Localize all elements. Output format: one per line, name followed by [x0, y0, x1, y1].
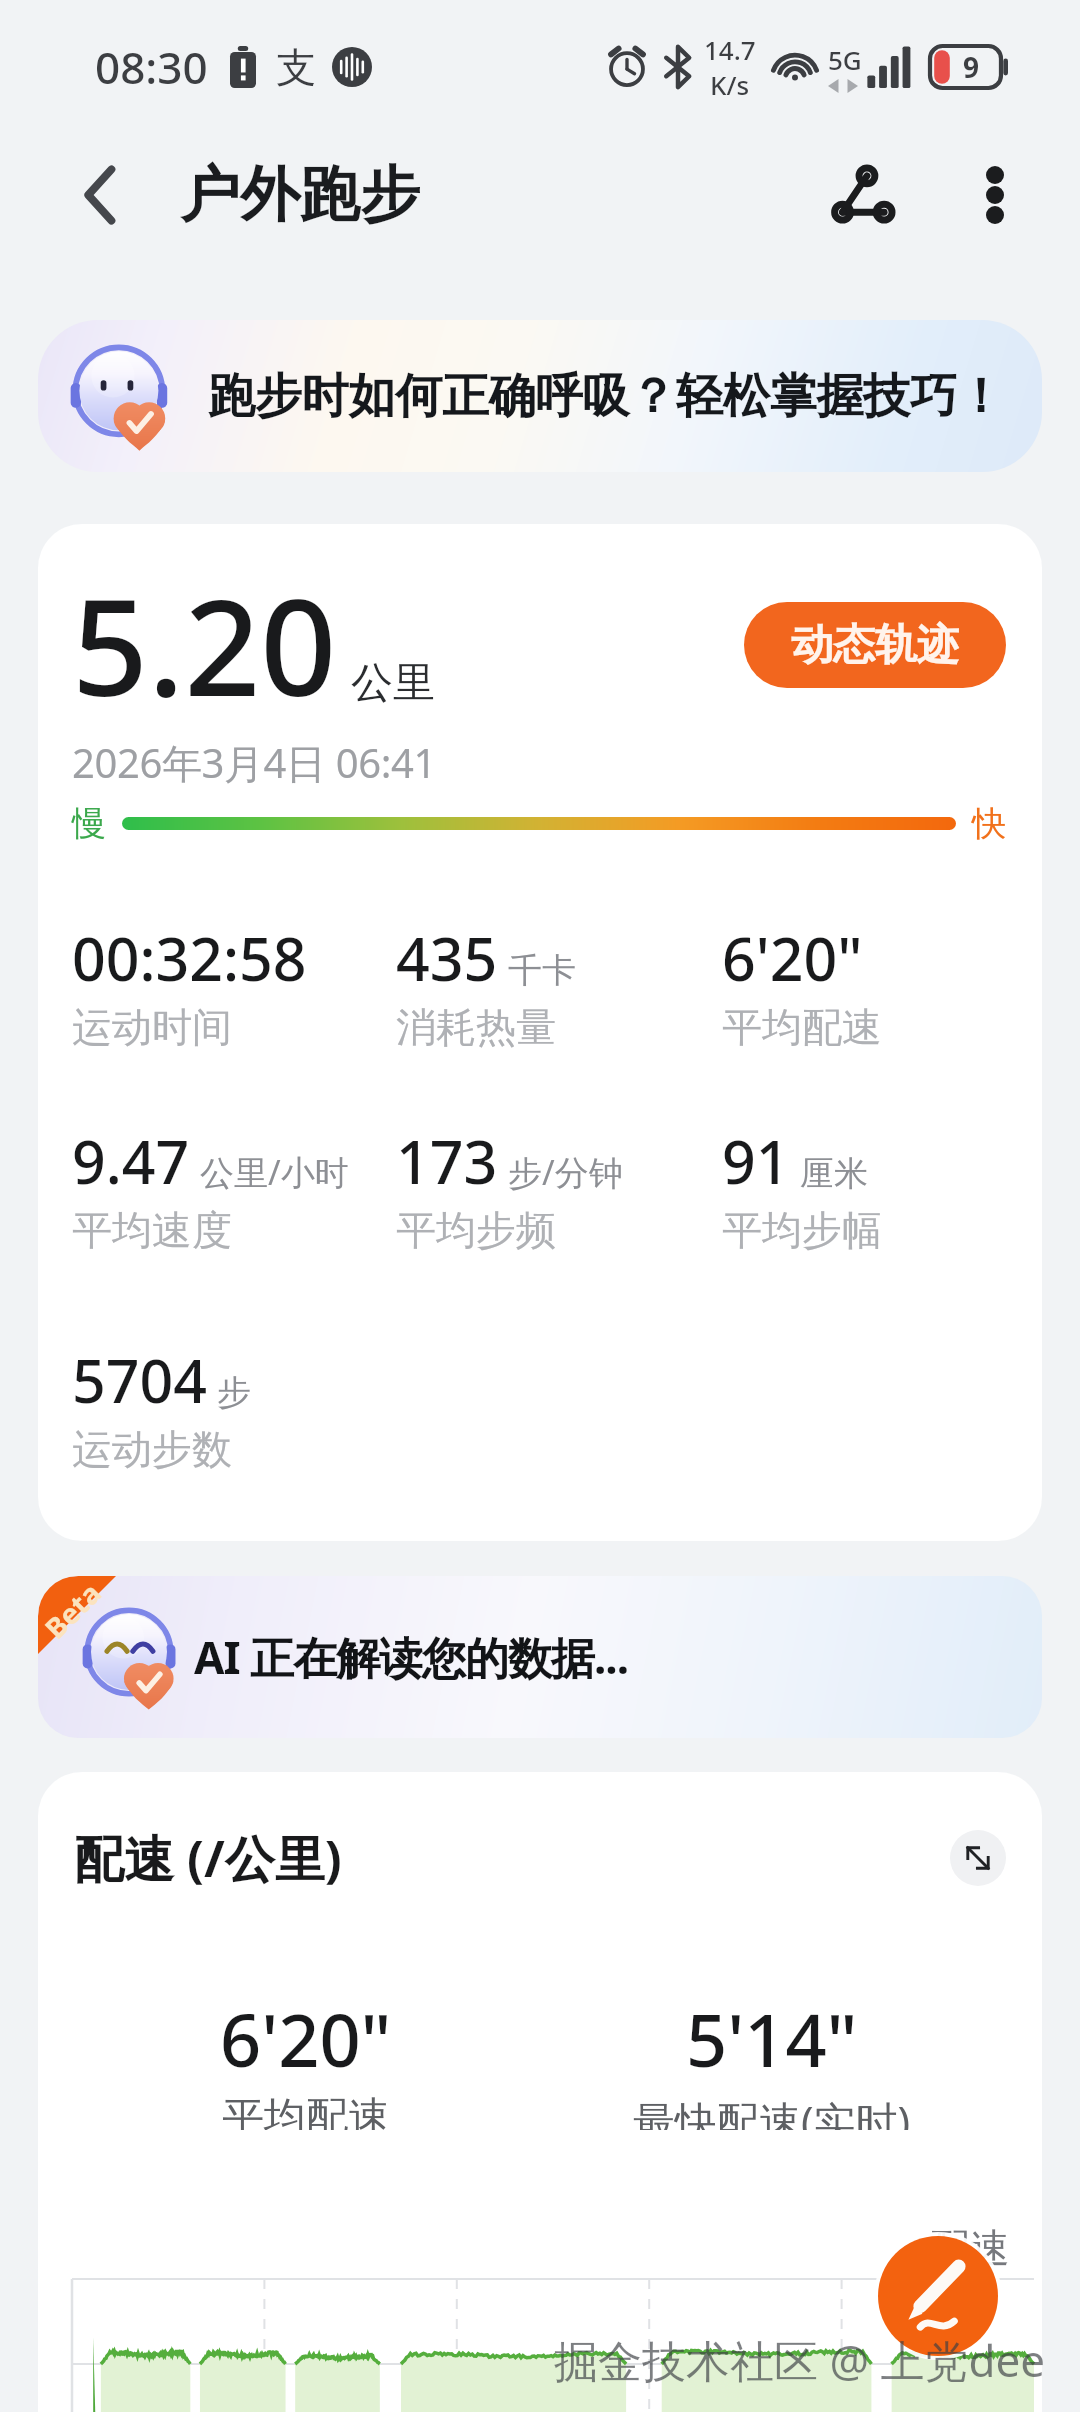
staticText: 配速 — [930, 2223, 1010, 2273]
staticText: 配速 (/公里) — [74, 1824, 342, 1892]
staticText: K/s — [710, 67, 750, 102]
staticText: 5'14" — [686, 1990, 858, 2088]
staticText: 173 — [396, 1121, 498, 1201]
staticText: 08:30 — [95, 37, 208, 97]
staticText: 9.47 — [72, 1121, 190, 1201]
staticText: 14.7 — [704, 32, 756, 67]
staticText: Beta — [38, 1576, 109, 1646]
button[interactable]: Expand chart — [950, 1830, 1006, 1886]
staticText: 慢 — [72, 802, 106, 845]
staticText: 平均步幅 — [722, 1205, 882, 1255]
staticText: 支 — [276, 42, 316, 92]
staticText: 6'20" — [220, 1990, 392, 2088]
staticText: 公里 — [351, 657, 435, 710]
staticText: 动态轨迹 — [791, 619, 959, 672]
staticText: 公里/小时 — [200, 1149, 349, 1195]
button[interactable]: More options — [940, 140, 1050, 250]
staticText: 5.20 — [72, 554, 337, 735]
button[interactable]: 跑步时如何正确呼吸？轻松掌握技巧！ — [38, 320, 1042, 472]
button[interactable]: Share — [808, 140, 918, 250]
staticText: 9 — [963, 48, 980, 86]
staticText: 2026年3月4日 06:41 — [72, 735, 436, 790]
staticText: 5G — [828, 42, 862, 77]
staticText: 户外跑步 — [180, 157, 420, 233]
staticText: 91 — [722, 1121, 790, 1201]
staticText: 5704 — [72, 1340, 207, 1420]
staticText: 平均步频 — [396, 1205, 556, 1255]
staticText: 00:32:58 — [72, 918, 307, 998]
staticText: AI 正在解读您的数据... — [194, 1627, 629, 1687]
staticText: 厘米 — [800, 1152, 868, 1195]
staticText: 6'20" — [722, 918, 863, 998]
staticText: 最快配速(实时) — [633, 2092, 911, 2130]
staticText: 步/分钟 — [508, 1149, 623, 1195]
staticText: 快 — [972, 802, 1006, 845]
staticText: 平均配速 — [222, 2092, 390, 2130]
staticText: 运动步数 — [72, 1424, 232, 1474]
staticText: 435 — [396, 918, 498, 998]
button[interactable]: Back — [36, 130, 166, 260]
staticText: 运动时间 — [72, 1002, 232, 1052]
staticText: 平均配速 — [722, 1002, 882, 1052]
staticText: 千卡 — [508, 949, 576, 992]
button[interactable]: Edit record — [878, 2236, 998, 2356]
staticText: 掘金技术社区 @ 上党dee — [554, 2330, 1046, 2390]
button[interactable]: 动态轨迹 — [744, 602, 1006, 688]
staticText: 消耗热量 — [396, 1002, 556, 1052]
staticText: 平均速度 — [72, 1205, 232, 1255]
staticText: 步 — [217, 1371, 251, 1414]
button[interactable]: AI 正在解读您的数据... — [38, 1576, 1042, 1738]
staticText: 跑步时如何正确呼吸？轻松掌握技巧！ — [208, 367, 1004, 426]
